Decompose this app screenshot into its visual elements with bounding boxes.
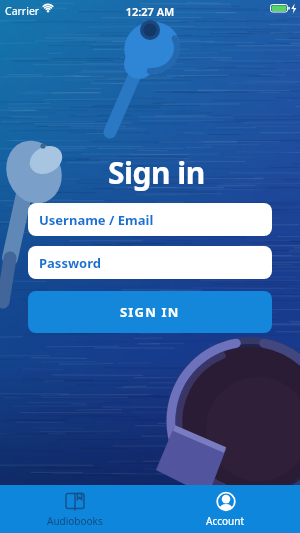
staticText: Sign in [108, 152, 205, 193]
button[interactable]: Username / Email [28, 203, 272, 236]
staticText: Account [206, 514, 245, 528]
staticText: Audiobooks [47, 514, 103, 528]
staticText: Username / Email [39, 211, 154, 229]
staticText: Password [39, 254, 101, 272]
staticText: Carrier [5, 4, 40, 18]
staticText: SIGN IN [120, 303, 180, 321]
button[interactable]: Password [28, 246, 272, 279]
button[interactable]: Account [150, 485, 300, 533]
staticText: 12:27 AM [0, 4, 300, 19]
button[interactable]: SIGN IN [28, 291, 272, 333]
button[interactable]: Audiobooks [0, 485, 150, 533]
